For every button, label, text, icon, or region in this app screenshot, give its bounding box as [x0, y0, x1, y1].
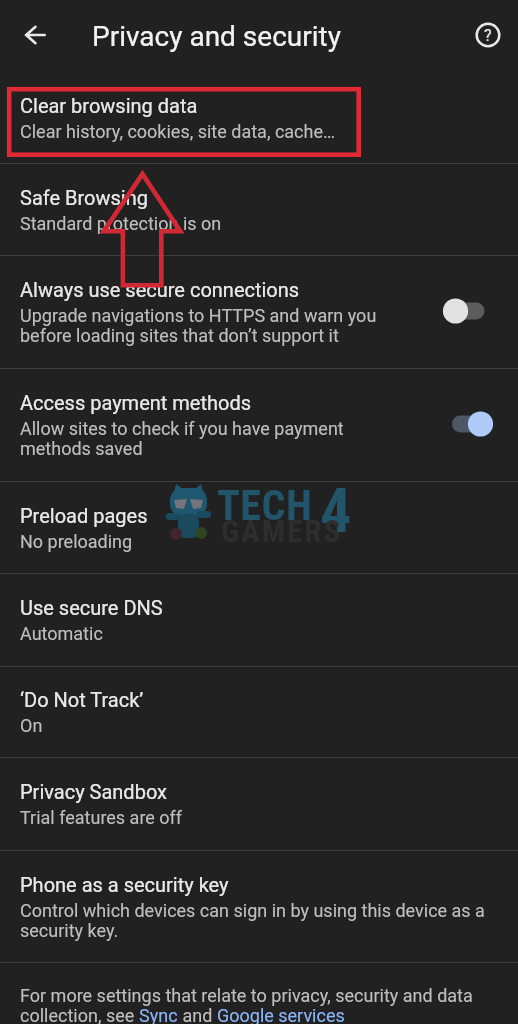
staticText: GAMERS	[221, 513, 343, 549]
staticText: before loading sites that don’t support …	[20, 325, 339, 346]
staticText: Clear history, cookies, site data, cache…	[20, 121, 336, 142]
staticText: Automatic	[20, 623, 103, 644]
button[interactable]	[0, 667, 518, 758]
staticText: Upgrade navigations to HTTPS and warn yo…	[20, 305, 377, 326]
staticText: Standard protection is on	[20, 213, 222, 234]
button[interactable]: Help	[465, 12, 511, 58]
button[interactable]: Back	[12, 12, 58, 58]
staticText: For more settings that relate to privacy…	[20, 985, 473, 1006]
button[interactable]: Switch on	[440, 402, 500, 446]
staticText: TECH	[217, 481, 313, 530]
staticText: Privacy and security	[92, 20, 341, 53]
button[interactable]	[0, 73, 518, 164]
staticText: Trial features are off	[20, 807, 183, 828]
button[interactable]	[0, 574, 518, 666]
staticText: Clear browsing data	[20, 94, 198, 117]
button[interactable]	[0, 851, 518, 962]
button[interactable]	[0, 256, 518, 368]
button[interactable]	[0, 482, 518, 573]
button[interactable]	[0, 758, 518, 850]
staticText: Safe Browsing	[20, 186, 148, 209]
staticText: Preload pages	[20, 504, 148, 527]
staticText: Allow sites to check if you have payment	[20, 418, 344, 439]
staticText: Phone as a security key	[20, 873, 229, 896]
staticText: 4	[320, 474, 352, 547]
button[interactable]: Switch off	[440, 289, 500, 333]
button[interactable]	[0, 369, 518, 481]
staticText: Always use secure connections	[20, 278, 300, 301]
staticText: security key.	[20, 920, 119, 941]
staticText: Privacy Sandbox	[20, 780, 168, 803]
staticText: and	[178, 1005, 217, 1024]
staticText: Control which devices can sign in by usi…	[20, 900, 485, 921]
staticText: No preloading	[20, 531, 133, 552]
staticText: ?	[484, 26, 492, 45]
button[interactable]: Sync	[139, 1005, 178, 1024]
button[interactable]: Google services	[217, 1005, 345, 1024]
button[interactable]	[0, 164, 518, 255]
staticText: collection, see	[20, 1005, 139, 1024]
staticText: On	[20, 715, 43, 736]
staticText: Use secure DNS	[20, 596, 163, 619]
staticText: ‘Do Not Track’	[20, 688, 144, 711]
staticText: methods saved	[20, 438, 143, 459]
staticText: Access payment methods	[20, 391, 252, 414]
